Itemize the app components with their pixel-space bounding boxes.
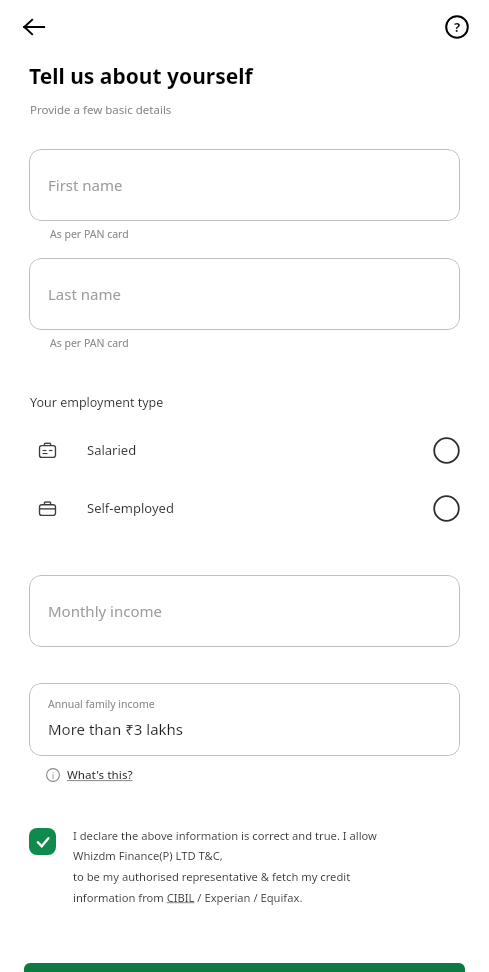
staticText: As per PAN card bbox=[50, 336, 129, 350]
staticText: Self-employed bbox=[87, 499, 174, 517]
button[interactable]: Annual family income bbox=[29, 683, 460, 756]
staticText: Monthly income bbox=[48, 601, 162, 621]
staticText: i bbox=[52, 770, 55, 781]
button[interactable]: Back bbox=[12, 5, 56, 49]
staticText: I declare the above information is corre… bbox=[73, 828, 377, 905]
staticText: ? bbox=[454, 18, 461, 36]
button[interactable]: i bbox=[46, 767, 133, 783]
staticText: As per PAN card bbox=[50, 227, 129, 241]
button[interactable]: I declare the above information is corre… bbox=[29, 828, 465, 905]
button[interactable]: Help bbox=[435, 5, 479, 49]
staticText: Salaried bbox=[87, 441, 137, 459]
button[interactable]: Last name bbox=[29, 258, 460, 330]
staticText: Last name bbox=[48, 284, 121, 304]
button[interactable]: Monthly income bbox=[29, 575, 460, 647]
staticText: What's this? bbox=[67, 767, 133, 783]
button[interactable]: Salaried bbox=[29, 433, 460, 467]
staticText: Tell us about yourself bbox=[29, 62, 253, 91]
staticText: Your employment type bbox=[30, 394, 164, 411]
button[interactable]: Self-employed bbox=[29, 491, 460, 525]
button[interactable]: Continue bbox=[24, 963, 465, 972]
staticText: Annual family income bbox=[48, 697, 155, 711]
staticText: Provide a few basic details bbox=[30, 102, 172, 118]
staticText: More than ₹3 lakhs bbox=[48, 719, 184, 739]
button[interactable]: First name bbox=[29, 149, 460, 221]
staticText: First name bbox=[48, 175, 123, 195]
